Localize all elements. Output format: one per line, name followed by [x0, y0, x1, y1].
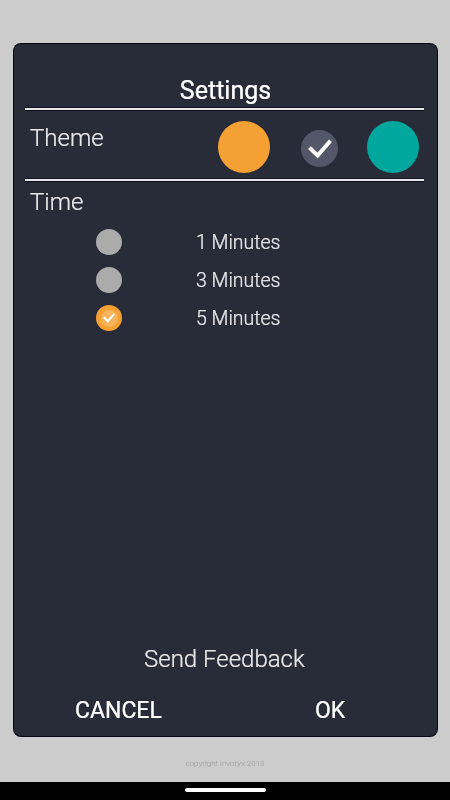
staticText: Theme	[30, 124, 104, 152]
button[interactable]: Teal theme	[367, 121, 419, 173]
staticText: copyright invotyx 2013	[0, 759, 450, 768]
staticText: 3 Minutes	[196, 269, 281, 292]
staticText: Settings	[14, 76, 437, 105]
button[interactable]: 5 Minutes	[14, 299, 437, 337]
button[interactable]: CANCEL	[56, 685, 180, 727]
button[interactable]: Send Feedback	[124, 633, 324, 675]
staticText: 5 Minutes	[196, 307, 281, 330]
button[interactable]: OK	[285, 685, 375, 727]
staticText: OK	[315, 697, 346, 724]
button[interactable]: 3 Minutes	[14, 261, 437, 299]
button[interactable]: Dark theme, selected	[301, 130, 338, 167]
button[interactable]: Orange theme	[218, 121, 270, 173]
staticText: Send Feedback	[144, 645, 305, 673]
staticText: CANCEL	[75, 697, 162, 724]
button[interactable]: 1 Minutes	[14, 223, 437, 261]
staticText: Time	[30, 188, 84, 216]
staticText: 1 Minutes	[196, 231, 281, 254]
